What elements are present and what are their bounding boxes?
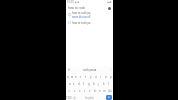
button[interactable]: m bbox=[102, 87, 107, 94]
button[interactable]: Search bbox=[106, 95, 112, 100]
button[interactable]: n bbox=[97, 87, 102, 94]
button[interactable]: c bbox=[82, 87, 87, 94]
button[interactable]: b bbox=[92, 87, 97, 94]
staticText: 10:09 ▪ ▪ bbox=[67, 0, 80, 4]
staticText: d bbox=[78, 82, 80, 86]
button[interactable]: Google bbox=[66, 66, 71, 73]
button[interactable]: Period bbox=[102, 95, 106, 100]
staticText: m bbox=[103, 89, 106, 93]
button[interactable]: j bbox=[96, 80, 101, 87]
button[interactable]: Shift bbox=[66, 87, 72, 94]
button[interactable]: Backspace bbox=[107, 87, 113, 94]
button[interactable]: v bbox=[87, 87, 92, 94]
staticText: how to cook pa bbox=[72, 11, 91, 15]
button[interactable]: l bbox=[106, 80, 111, 87]
staticText: English bbox=[85, 96, 94, 100]
staticText: t bbox=[85, 75, 87, 79]
staticText: n bbox=[99, 89, 101, 93]
staticText: www.bbcgoodf bbox=[72, 15, 91, 18]
button[interactable]: how to cook bbox=[68, 5, 111, 11]
staticText: v bbox=[89, 89, 91, 93]
button[interactable]: a bbox=[68, 80, 72, 87]
staticText: x bbox=[79, 89, 81, 93]
staticText: ⌕ bbox=[108, 96, 110, 99]
staticText: G bbox=[68, 68, 70, 72]
button[interactable]: how to cook pa bbox=[68, 11, 111, 18]
staticText: e bbox=[75, 75, 77, 79]
staticText: q bbox=[67, 75, 69, 79]
staticText: . bbox=[104, 96, 105, 100]
button[interactable]: w bbox=[70, 73, 74, 80]
button[interactable]: how to cook pa bbox=[68, 20, 111, 25]
staticText: h bbox=[93, 82, 95, 86]
staticText: l bbox=[108, 82, 109, 86]
button[interactable]: x bbox=[77, 87, 82, 94]
button[interactable]: o bbox=[103, 73, 108, 80]
staticText: f bbox=[83, 82, 84, 86]
staticText: j bbox=[98, 82, 99, 86]
button[interactable]: y bbox=[88, 73, 93, 80]
staticText: u bbox=[95, 75, 97, 79]
staticText: r bbox=[80, 75, 82, 79]
button[interactable]: Space bbox=[76, 95, 102, 100]
button[interactable]: u bbox=[93, 73, 98, 80]
button[interactable]: z bbox=[72, 87, 77, 94]
staticText: o bbox=[105, 75, 107, 79]
staticText: cook pasta bbox=[83, 68, 97, 72]
button[interactable]: Symbols bbox=[66, 95, 72, 100]
staticText: ▴▪▮ bbox=[107, 1, 112, 4]
staticText: p bbox=[110, 75, 112, 79]
button[interactable]: Account bbox=[108, 7, 111, 10]
staticText: ⇧ bbox=[68, 89, 71, 92]
button[interactable]: e bbox=[74, 73, 78, 80]
staticText: b bbox=[94, 89, 96, 93]
staticText: c bbox=[84, 89, 86, 93]
button[interactable]: t bbox=[83, 73, 88, 80]
button[interactable]: i bbox=[98, 73, 103, 80]
button[interactable]: s bbox=[72, 80, 76, 87]
button[interactable]: d bbox=[76, 80, 81, 87]
button[interactable]: p bbox=[108, 73, 113, 80]
button[interactable]: h bbox=[91, 80, 96, 87]
staticText: i bbox=[100, 75, 101, 79]
button[interactable]: More options bbox=[108, 66, 113, 73]
staticText: g bbox=[88, 82, 90, 86]
staticText: ☺ bbox=[73, 96, 76, 99]
button[interactable]: k bbox=[101, 80, 106, 87]
button[interactable]: r bbox=[78, 73, 83, 80]
button[interactable]: g bbox=[86, 80, 91, 87]
button[interactable]: q bbox=[66, 73, 70, 80]
staticText: k bbox=[103, 82, 105, 86]
staticText: z bbox=[74, 89, 76, 93]
staticText: y bbox=[90, 75, 92, 79]
staticText: ⋮ bbox=[109, 68, 112, 71]
staticText: s bbox=[73, 82, 75, 86]
button[interactable]: Emoji bbox=[72, 95, 76, 100]
staticText: how to cook bbox=[68, 6, 86, 10]
staticText: ?123 bbox=[66, 96, 72, 100]
staticText: w bbox=[71, 75, 74, 79]
staticText: a bbox=[69, 82, 71, 86]
staticText: how to cook pa bbox=[72, 21, 91, 25]
button[interactable]: f bbox=[81, 80, 86, 87]
staticText: ⌦ bbox=[108, 89, 112, 92]
